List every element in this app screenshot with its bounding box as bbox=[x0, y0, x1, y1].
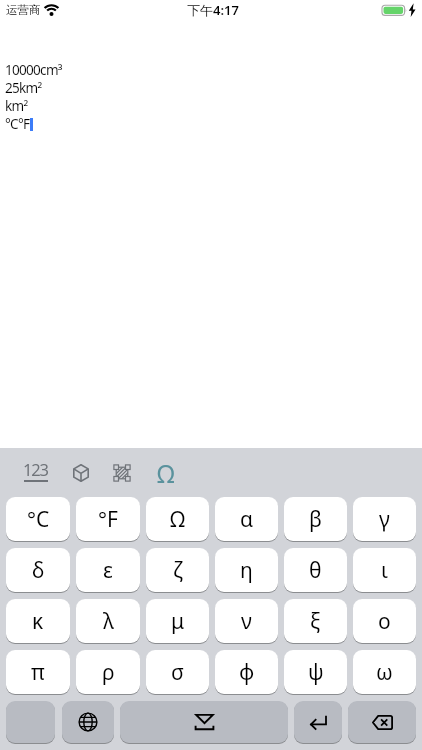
staticText: Ω bbox=[170, 505, 186, 534]
button[interactable]: θ bbox=[284, 548, 347, 592]
staticText: 123 bbox=[23, 458, 48, 480]
button[interactable]: ω bbox=[353, 650, 416, 694]
button[interactable]: α bbox=[215, 497, 278, 541]
button[interactable]: ν bbox=[215, 599, 278, 643]
staticText: 运营商 bbox=[6, 3, 41, 17]
button[interactable]: ξ bbox=[284, 599, 347, 643]
button[interactable]: λ bbox=[76, 599, 140, 643]
button[interactable]: φ bbox=[215, 650, 278, 694]
button[interactable] bbox=[73, 464, 89, 482]
staticText: ω bbox=[376, 658, 393, 687]
button[interactable]: ψ bbox=[284, 650, 347, 694]
button[interactable]: °F bbox=[76, 497, 140, 541]
staticText: α bbox=[240, 505, 254, 534]
button[interactable] bbox=[120, 701, 288, 743]
button[interactable]: Ω bbox=[154, 456, 178, 490]
staticText: Ω bbox=[157, 457, 175, 490]
staticText: κ bbox=[32, 607, 44, 636]
button[interactable]: ρ bbox=[76, 650, 140, 694]
button[interactable]: Ω bbox=[146, 497, 209, 541]
button[interactable]: η bbox=[215, 548, 278, 592]
button[interactable]: 123 bbox=[21, 456, 50, 484]
staticText: ε bbox=[103, 556, 113, 585]
staticText: π bbox=[31, 658, 45, 687]
staticText: δ bbox=[32, 556, 45, 585]
staticText: °C°F bbox=[5, 115, 30, 133]
button[interactable]: κ bbox=[6, 599, 70, 643]
staticText: °C bbox=[27, 505, 50, 534]
button[interactable] bbox=[294, 701, 342, 743]
staticText: 下午4:17 bbox=[187, 1, 239, 19]
button[interactable] bbox=[6, 701, 55, 743]
staticText: θ bbox=[309, 556, 322, 585]
staticText: 10000cm³ bbox=[5, 61, 62, 79]
button[interactable] bbox=[62, 701, 114, 743]
button[interactable]: μ bbox=[146, 599, 209, 643]
staticText: 25km² bbox=[5, 79, 42, 97]
button[interactable]: π bbox=[6, 650, 70, 694]
staticText: ξ bbox=[310, 607, 321, 636]
staticText: km² bbox=[5, 97, 28, 115]
staticText: ζ bbox=[173, 556, 183, 585]
button[interactable]: ε bbox=[76, 548, 140, 592]
staticText: η bbox=[240, 556, 253, 585]
button[interactable]: σ bbox=[146, 650, 209, 694]
button[interactable] bbox=[348, 701, 416, 743]
staticText: °F bbox=[98, 505, 118, 534]
button[interactable]: δ bbox=[6, 548, 70, 592]
button[interactable]: ζ bbox=[146, 548, 209, 592]
button[interactable]: ι bbox=[353, 548, 416, 592]
staticText: λ bbox=[103, 607, 114, 636]
button[interactable]: ο bbox=[353, 599, 416, 643]
staticText: σ bbox=[171, 658, 184, 687]
staticText: ι bbox=[381, 556, 388, 585]
staticText: β bbox=[309, 505, 322, 534]
staticText: μ bbox=[171, 607, 185, 636]
staticText: ν bbox=[241, 607, 252, 636]
button[interactable] bbox=[114, 465, 130, 481]
staticText: γ bbox=[379, 505, 390, 534]
staticText: ψ bbox=[308, 658, 324, 687]
button[interactable]: β bbox=[284, 497, 347, 541]
button[interactable]: γ bbox=[353, 497, 416, 541]
staticText: ο bbox=[378, 607, 391, 636]
staticText: ρ bbox=[102, 658, 115, 687]
button[interactable]: °C bbox=[6, 497, 70, 541]
staticText: φ bbox=[239, 658, 255, 687]
